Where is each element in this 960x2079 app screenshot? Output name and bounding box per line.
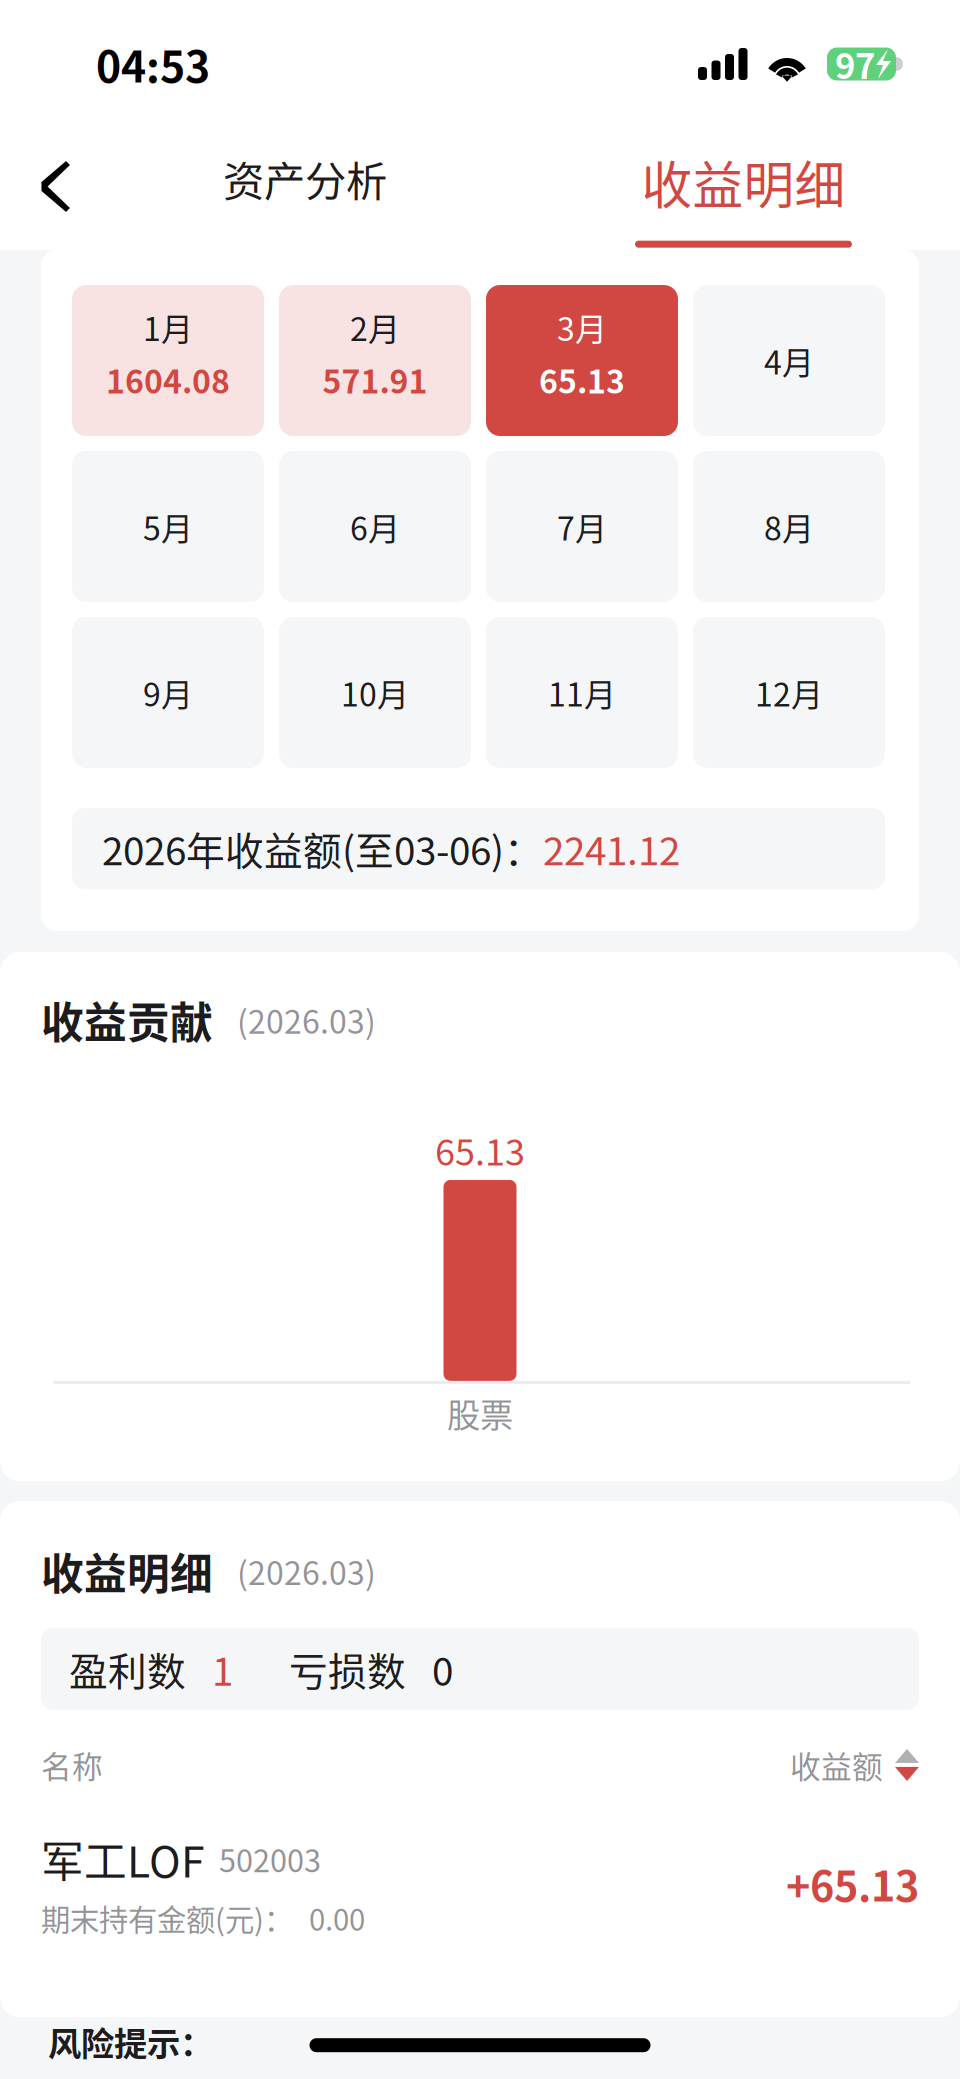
staticText: 65.13	[435, 1124, 525, 1176]
staticText: 7月	[557, 503, 607, 550]
staticText: 97	[835, 39, 875, 89]
button[interactable]: 9月	[72, 617, 264, 768]
staticText: 0.00	[309, 1897, 365, 1939]
staticText: 1604.08	[106, 356, 230, 403]
staticText: 12月	[755, 669, 823, 716]
staticText: 11月	[548, 669, 616, 716]
staticText: 4月	[764, 337, 814, 384]
button[interactable]: 资产分析	[213, 116, 397, 246]
button[interactable]: 8月	[693, 451, 885, 602]
staticText: +65.13	[786, 1854, 919, 1914]
staticText: 8月	[764, 503, 814, 550]
staticText: 10月	[341, 669, 409, 716]
staticText: 收益额	[790, 1743, 883, 1787]
staticText: 6月	[350, 503, 400, 550]
staticText: 2241.12	[543, 820, 680, 876]
staticText: 资产分析	[223, 149, 387, 208]
button[interactable]: 12月	[693, 617, 885, 768]
staticText: 2026年收益额(至03-06)：	[102, 820, 543, 876]
button[interactable]: 5月	[72, 451, 264, 602]
button[interactable]: 1月	[72, 285, 264, 436]
staticText: 1	[212, 1641, 233, 1697]
button[interactable]: 2月	[279, 285, 471, 436]
staticText: 收益贡献	[41, 989, 213, 1051]
button[interactable]: 3月	[486, 285, 678, 436]
staticText: 2月	[350, 304, 400, 350]
button[interactable]: 4月	[693, 285, 885, 436]
staticText: (2026.03)	[237, 1548, 376, 1594]
button[interactable]: 11月	[486, 617, 678, 768]
staticText: 5月	[143, 503, 193, 550]
button[interactable]: 10月	[279, 617, 471, 768]
staticText: 亏损数	[289, 1641, 406, 1697]
staticText: 9月	[143, 669, 193, 716]
staticText: 名称	[41, 1743, 103, 1787]
staticText: 3月	[557, 304, 607, 350]
staticText: 军工LOF	[41, 1828, 205, 1890]
staticText: 65.13	[539, 356, 625, 403]
button[interactable]: 6月	[279, 451, 471, 602]
staticText: 收益明细	[641, 145, 845, 219]
button[interactable]: 军工LOF	[0, 1828, 960, 1939]
staticText: 1月	[143, 304, 193, 350]
button[interactable]: 按收益额排序	[790, 1735, 919, 1795]
staticText: 0	[432, 1641, 453, 1697]
staticText: 风险提示：	[48, 2017, 213, 2065]
staticText: 04:53	[96, 33, 210, 95]
staticText: 盈利数	[69, 1641, 186, 1697]
button[interactable]: 7月	[486, 451, 678, 602]
staticText: (2026.03)	[237, 997, 376, 1043]
staticText: 571.91	[322, 356, 427, 403]
staticText: 股票	[447, 1389, 513, 1437]
button[interactable]: 返回	[0, 131, 95, 231]
staticText: 收益明细	[41, 1540, 213, 1602]
staticText: 期末持有金额(元)：	[41, 1897, 293, 1939]
button[interactable]: 收益明细	[625, 114, 862, 248]
staticText: 502003	[219, 1837, 321, 1881]
